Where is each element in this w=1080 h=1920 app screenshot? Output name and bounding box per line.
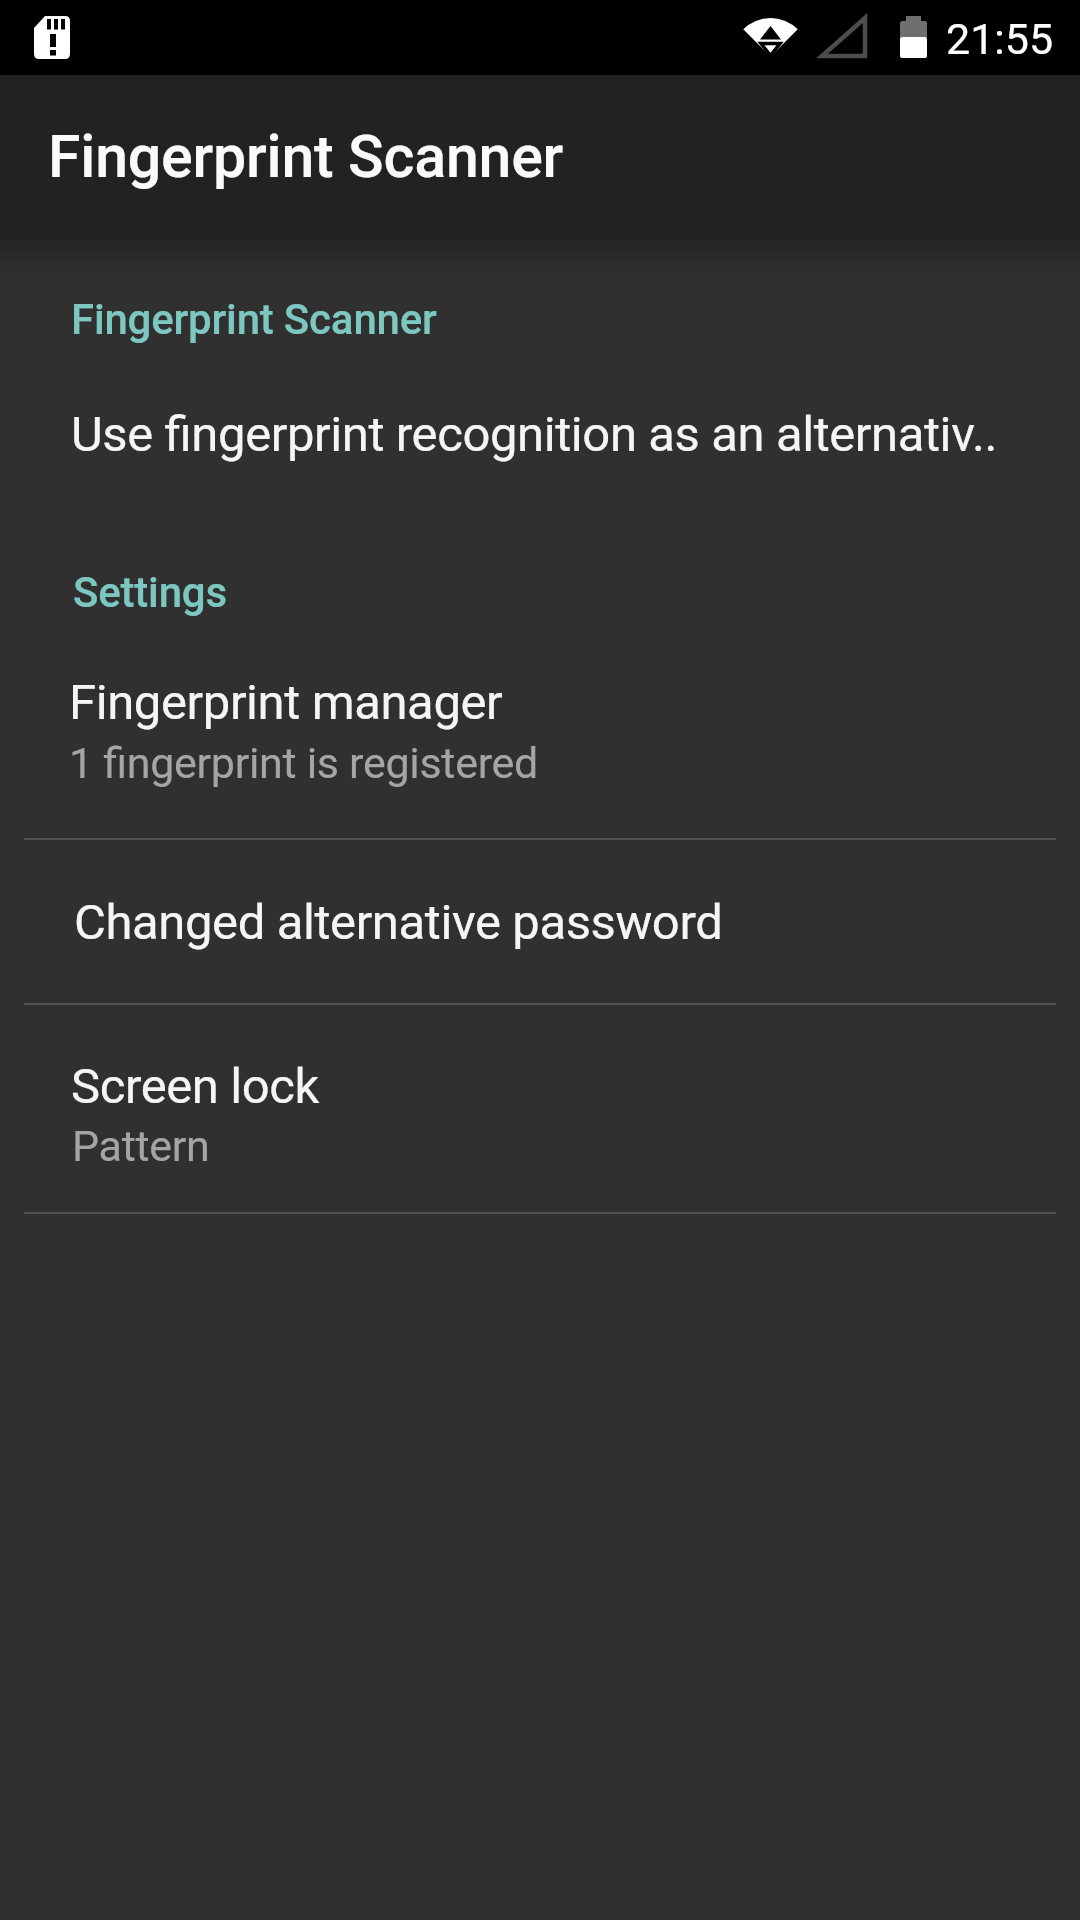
staticText: Settings — [73, 568, 227, 617]
button[interactable]: Screen lock — [0, 1005, 1080, 1212]
staticText: 21:55 — [946, 14, 1054, 64]
staticText: Fingerprint Scanner — [48, 122, 564, 191]
button[interactable]: Fingerprint manager — [0, 630, 1080, 838]
staticText: Changed alternative password — [74, 894, 723, 951]
staticText: Fingerprint Scanner — [71, 295, 437, 344]
staticText: 1 fingerprint is registered — [69, 738, 538, 788]
staticText: Pattern — [72, 1121, 210, 1171]
staticText: Screen lock — [71, 1058, 320, 1115]
button[interactable]: Changed alternative password — [0, 840, 1080, 1003]
button[interactable]: Use fingerprint recognition as an altern… — [0, 355, 1080, 530]
staticText: Use fingerprint recognition as an altern… — [71, 406, 997, 463]
staticText: Fingerprint manager — [69, 674, 503, 731]
